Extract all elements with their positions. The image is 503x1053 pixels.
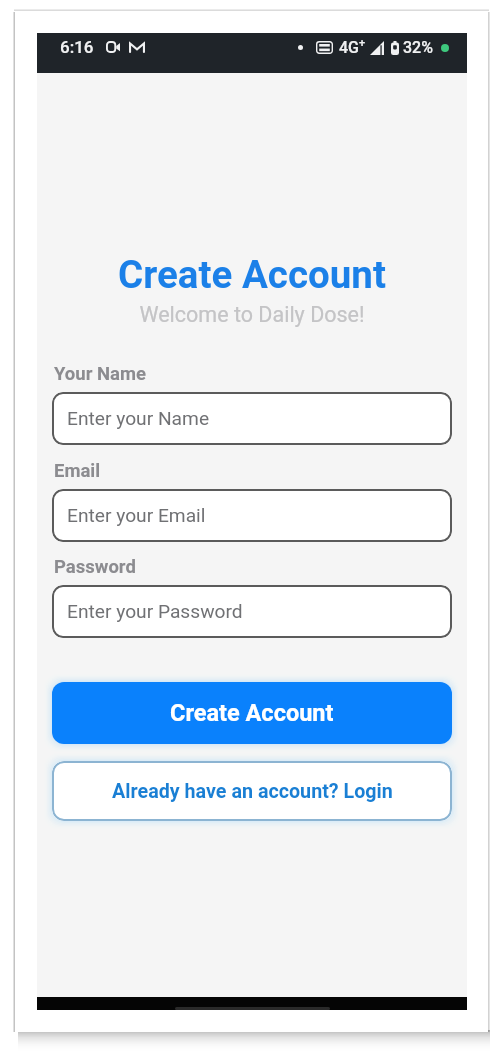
staticText: Already have an account? Login — [112, 780, 393, 803]
staticText: Your Name — [54, 363, 147, 385]
staticText: 32% — [403, 38, 433, 57]
staticText: Create Account — [37, 252, 467, 297]
button[interactable]: Enter your Name — [52, 392, 452, 445]
staticText: 6:16 — [60, 37, 94, 57]
button[interactable]: Enter your Password — [52, 585, 452, 638]
staticText: Email — [54, 460, 101, 482]
staticText: Create Account — [170, 699, 334, 727]
staticText: Welcome to Daily Dose! — [37, 302, 467, 327]
staticText: 4G — [339, 38, 359, 57]
other: Gmail — [129, 41, 145, 53]
staticText: Password — [54, 556, 136, 578]
other: Camera active — [106, 41, 120, 53]
other: Battery — [391, 41, 399, 55]
staticText: + — [359, 37, 366, 50]
staticText: Enter your Password — [67, 600, 243, 623]
other: VoLTE — [316, 41, 333, 54]
staticText: Enter your Email — [67, 504, 206, 527]
button[interactable]: Create Account — [52, 682, 452, 744]
button[interactable]: Already have an account? Login — [52, 761, 452, 821]
staticText: Enter your Name — [67, 407, 210, 430]
button[interactable]: Enter your Email — [52, 489, 452, 542]
other: Signal strength — [370, 41, 384, 55]
